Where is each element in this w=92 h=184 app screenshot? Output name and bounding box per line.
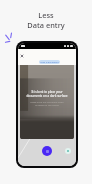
staticText: It is best to place your documents on a … [26,90,68,98]
staticText: Less [38,10,54,20]
button[interactable]: Scan a document [39,60,60,64]
staticText: Scan a document [40,61,59,64]
staticText: Make sure the complete page is visible i… [30,100,64,107]
button[interactable]: Capture [42,146,52,156]
button[interactable]: Gallery [65,148,71,154]
staticText: Data entry [27,20,65,30]
button[interactable]: Close [20,54,24,58]
